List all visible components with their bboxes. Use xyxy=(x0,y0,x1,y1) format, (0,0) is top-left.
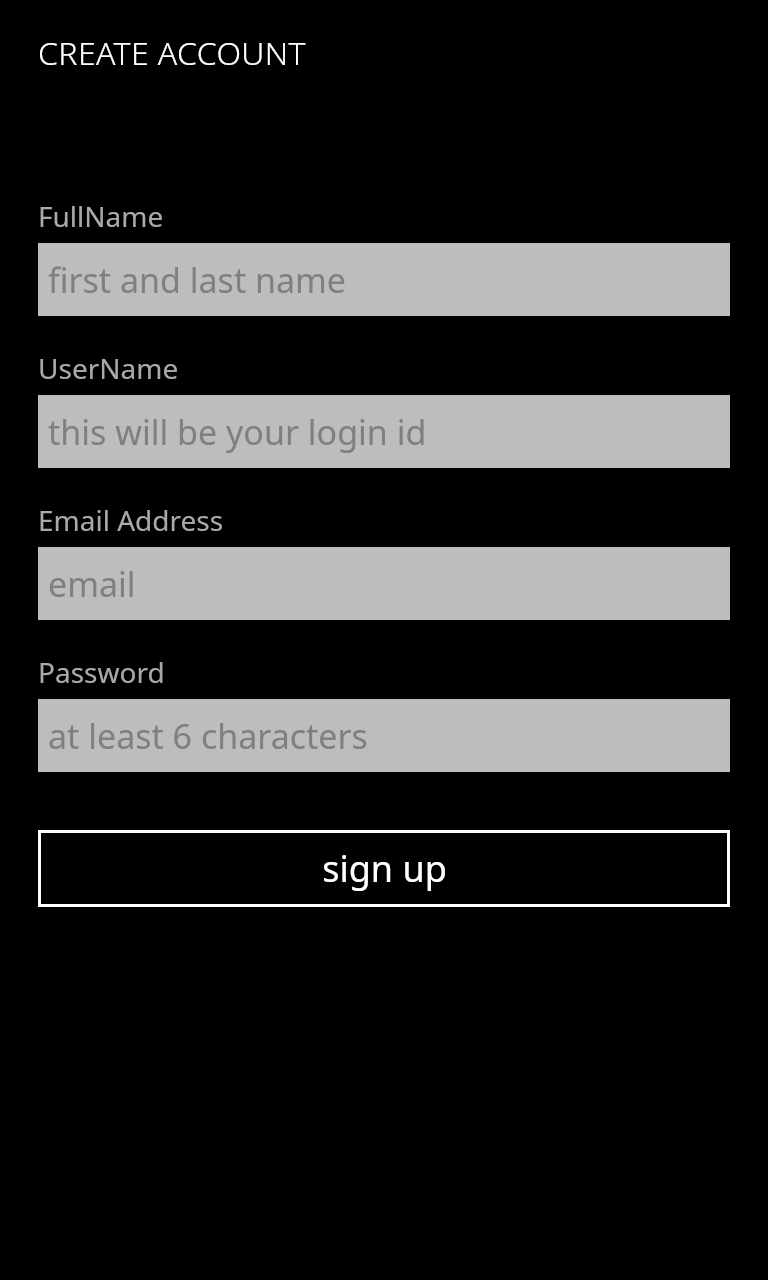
staticText: this will be your login id xyxy=(48,409,427,455)
staticText: Email Address xyxy=(38,501,224,539)
button[interactable]: this will be your login id xyxy=(38,395,730,468)
staticText: Password xyxy=(38,653,165,691)
staticText: UserName xyxy=(38,349,179,387)
button[interactable]: at least 6 characters xyxy=(38,699,730,772)
staticText: CREATE ACCOUNT xyxy=(38,31,306,75)
staticText: sign up xyxy=(322,844,447,893)
staticText: first and last name xyxy=(48,257,347,303)
staticText: FullName xyxy=(38,197,164,235)
button[interactable]: sign up xyxy=(38,830,730,907)
staticText: email xyxy=(48,561,136,607)
button[interactable]: email xyxy=(38,547,730,620)
button[interactable]: first and last name xyxy=(38,243,730,316)
staticText: at least 6 characters xyxy=(48,713,368,759)
